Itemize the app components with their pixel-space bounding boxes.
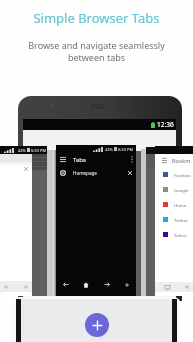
button[interactable]: Forward <box>102 280 111 289</box>
staticText: Yahoo <box>174 232 187 238</box>
staticText: 42% <box>105 147 113 152</box>
staticText: Tabs <box>73 156 86 164</box>
button[interactable]: Bookmarks <box>162 154 193 167</box>
staticText: Bookmarks <box>172 157 193 164</box>
staticText: 42% <box>18 148 26 153</box>
staticText: Homepage <box>73 170 97 176</box>
button[interactable]: Tabs <box>60 153 133 166</box>
staticText: Google <box>174 187 189 193</box>
staticText: 6:33 PM <box>118 147 134 152</box>
staticText: Simple Browser Tabs <box>33 9 160 27</box>
staticText: Home - You <box>174 202 193 208</box>
staticText: 12:36 <box>157 120 174 129</box>
button[interactable]: Home - You <box>163 197 193 212</box>
button[interactable]: Google <box>163 182 193 197</box>
staticText: Twitter <box>174 217 189 223</box>
button[interactable]: Facebook <box>163 167 193 182</box>
button[interactable]: Back <box>61 280 70 289</box>
staticText: 6:33 PM <box>31 148 47 153</box>
staticText: Browse and navigate seamlessly between t… <box>28 39 165 63</box>
button[interactable]: New tab <box>122 280 131 289</box>
other: Close tab <box>128 171 132 175</box>
staticText: Facebook <box>174 172 193 178</box>
button[interactable]: New tab <box>85 313 109 337</box>
button[interactable]: Home <box>81 280 90 289</box>
button[interactable]: Twitter <box>163 212 193 227</box>
button[interactable]: Yahoo <box>163 227 193 242</box>
button[interactable]: Homepage <box>60 166 132 179</box>
